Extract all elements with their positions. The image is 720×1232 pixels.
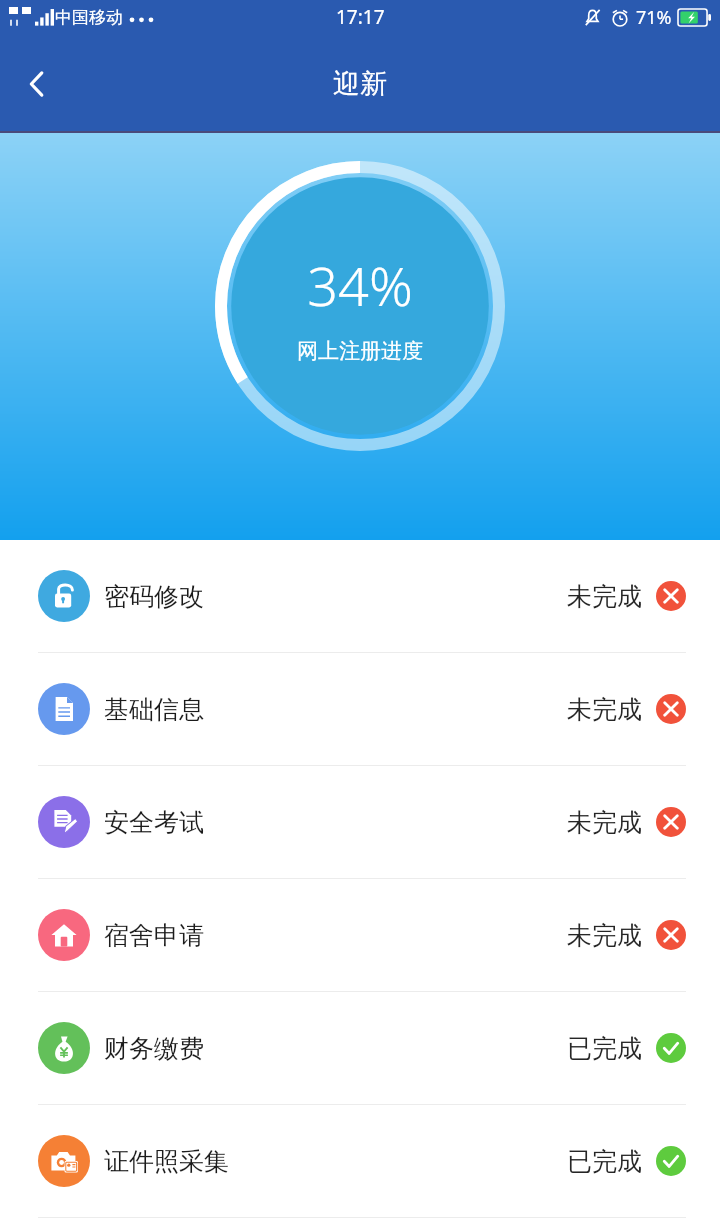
staticText: 中国移动 <box>55 7 123 28</box>
staticText: 已完成 <box>567 1146 642 1177</box>
staticText: 迎新 <box>333 67 387 101</box>
staticText: 基础信息 <box>104 694 204 725</box>
staticText: 未完成 <box>567 807 642 838</box>
staticText: 网上注册进度 <box>297 338 423 364</box>
staticText: 宿舍申请 <box>104 920 204 951</box>
button[interactable]: 密码修改 <box>0 540 720 652</box>
button[interactable]: 证件照采集 <box>0 1105 720 1217</box>
button[interactable]: 财务缴费 <box>0 992 720 1104</box>
staticText: 财务缴费 <box>104 1033 204 1064</box>
staticText: 证件照采集 <box>104 1146 229 1177</box>
staticText: 71% <box>636 5 672 30</box>
button[interactable]: 宿舍申请 <box>0 879 720 991</box>
button[interactable]: 安全考试 <box>0 766 720 878</box>
button[interactable]: Back <box>6 53 68 115</box>
staticText: 17:17 <box>336 4 385 30</box>
staticText: 34% <box>307 248 413 322</box>
staticText: 未完成 <box>567 694 642 725</box>
button[interactable]: 基础信息 <box>0 653 720 765</box>
staticText: 未完成 <box>567 920 642 951</box>
staticText: 安全考试 <box>104 807 204 838</box>
staticText: 已完成 <box>567 1033 642 1064</box>
staticText: 未完成 <box>567 581 642 612</box>
staticText: 密码修改 <box>104 581 204 612</box>
